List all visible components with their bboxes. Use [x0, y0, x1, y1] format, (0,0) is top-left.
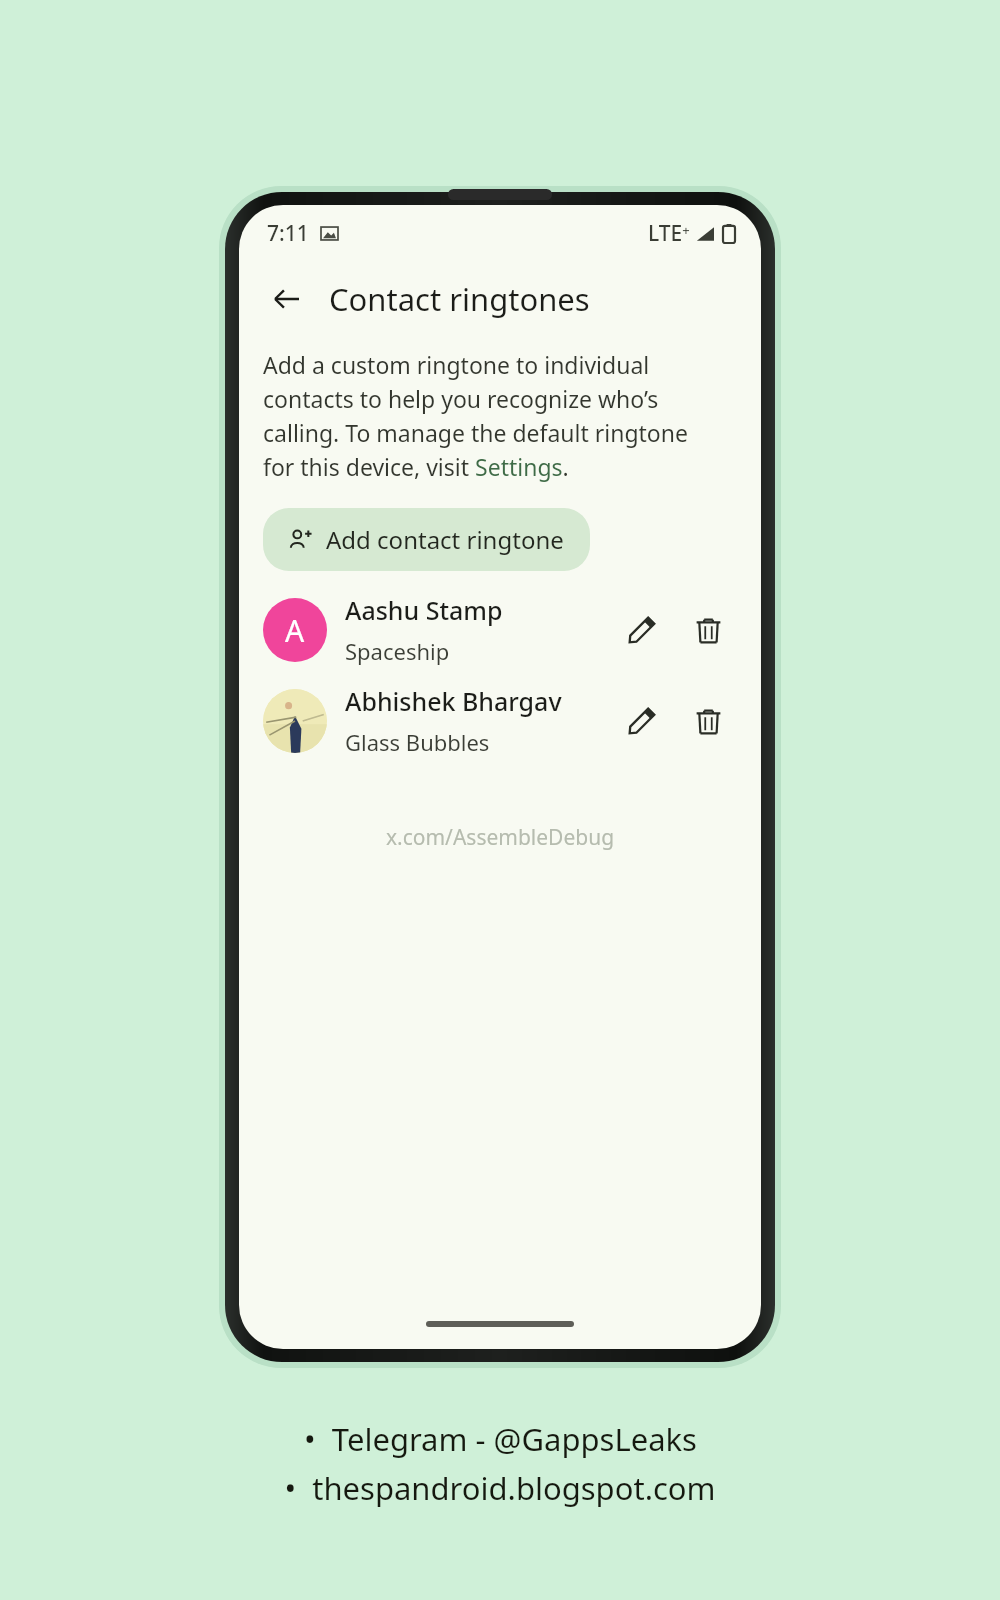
button[interactable]: Back	[263, 276, 309, 322]
button[interactable]: Add contact ringtone	[263, 508, 590, 571]
staticText: Add a custom ringtone to individual cont…	[263, 349, 725, 482]
button[interactable]: A	[239, 593, 761, 666]
staticText: Add contact ringtone	[326, 523, 564, 556]
staticText: Glass Bubbles	[345, 727, 490, 757]
button[interactable]: Delete	[681, 603, 735, 657]
staticText: Spaceship	[345, 636, 450, 666]
button[interactable]: Edit	[615, 694, 669, 748]
staticText: x.com/AssembleDebug	[239, 823, 761, 852]
staticText: Aashu Stamp	[345, 593, 503, 627]
staticText: • Telegram - @GappsLeaks	[304, 1418, 697, 1460]
button[interactable]: Delete	[681, 694, 735, 748]
button[interactable]: Abhishek Bhargav	[239, 684, 761, 757]
staticText: A	[285, 610, 305, 651]
staticText: 7:11	[267, 219, 309, 248]
staticText: • thespandroid.blogspot.com	[284, 1467, 716, 1509]
staticText: Contact ringtones	[329, 278, 590, 320]
staticText: Abhishek Bhargav	[345, 684, 562, 718]
button[interactable]: Edit	[615, 603, 669, 657]
staticText: LTE+	[648, 219, 690, 248]
